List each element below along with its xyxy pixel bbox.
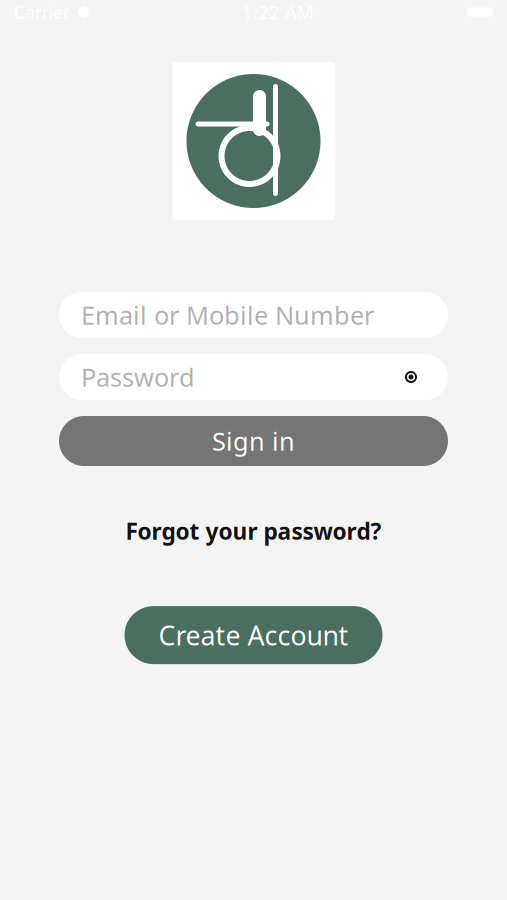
- staticText: Carrier: [14, 0, 70, 23]
- staticText: Create Account: [158, 617, 348, 653]
- staticText: Password: [81, 360, 195, 394]
- button[interactable]: Forgot your password?: [111, 508, 395, 554]
- button[interactable]: Create Account: [124, 606, 382, 664]
- button[interactable]: Sign in: [59, 416, 448, 466]
- staticText: Email or Mobile Number: [81, 298, 374, 332]
- staticText: 1:22 AM: [242, 0, 314, 24]
- staticText: Sign in: [212, 424, 295, 458]
- staticText: Forgot your password?: [125, 516, 381, 546]
- button[interactable]: Show password: [396, 362, 426, 392]
